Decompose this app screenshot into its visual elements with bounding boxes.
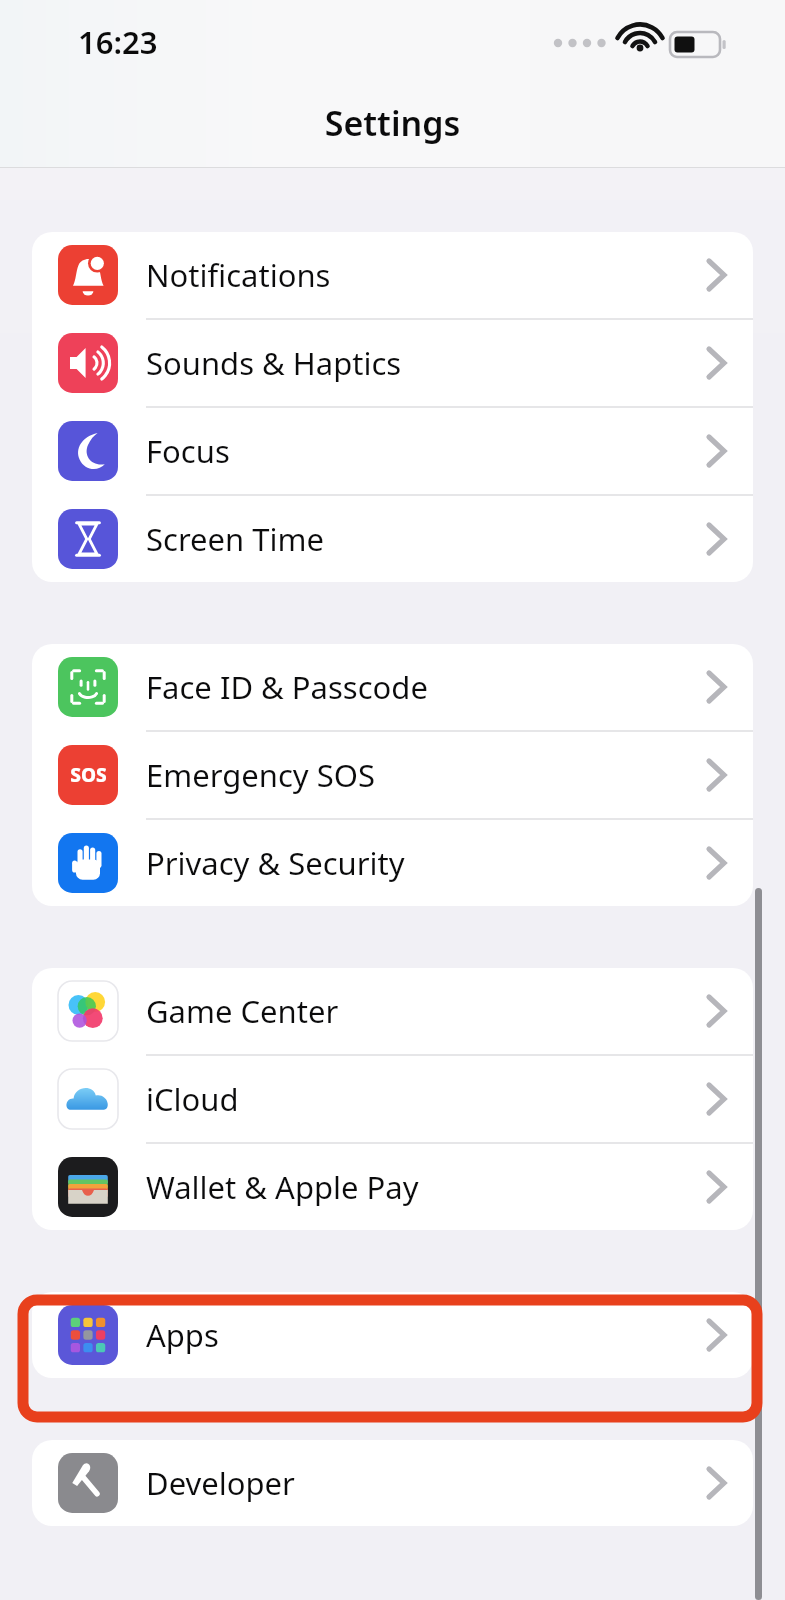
- staticText: iCloud: [146, 1078, 239, 1120]
- button[interactable]: Screen Time: [32, 496, 753, 582]
- staticText: Sounds & Haptics: [146, 342, 402, 384]
- button[interactable]: Privacy & Security: [32, 820, 753, 906]
- button[interactable]: Notifications: [32, 232, 753, 318]
- staticText: Notifications: [146, 254, 331, 296]
- button[interactable]: Developer: [32, 1440, 753, 1526]
- staticText: Screen Time: [146, 518, 324, 560]
- staticText: SOS: [70, 762, 107, 788]
- staticText: Emergency SOS: [146, 754, 375, 796]
- staticText: Privacy & Security: [146, 842, 405, 884]
- staticText: Wallet & Apple Pay: [146, 1166, 419, 1208]
- staticText: Face ID & Passcode: [146, 666, 428, 708]
- button[interactable]: SOS: [32, 732, 753, 818]
- staticText: Game Center: [146, 990, 339, 1032]
- button[interactable]: iCloud: [32, 1056, 753, 1142]
- staticText: Apps: [146, 1314, 219, 1356]
- staticText: Developer: [146, 1462, 295, 1504]
- button[interactable]: Apps: [32, 1292, 753, 1378]
- button[interactable]: Game Center: [32, 968, 753, 1054]
- button[interactable]: Wallet & Apple Pay: [32, 1144, 753, 1230]
- button[interactable]: Face ID & Passcode: [32, 644, 753, 730]
- button[interactable]: Sounds & Haptics: [32, 320, 753, 406]
- button[interactable]: Focus: [32, 408, 753, 494]
- staticText: Settings: [0, 100, 785, 146]
- staticText: Focus: [146, 430, 230, 472]
- staticText: 16:23: [78, 21, 158, 63]
